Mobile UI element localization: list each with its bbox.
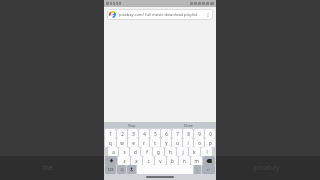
button[interactable]: o — [194, 138, 204, 147]
button[interactable]: 5 — [150, 129, 160, 138]
button[interactable]: Shift — [105, 156, 117, 165]
staticText: n — [183, 158, 186, 164]
button[interactable]: f — [141, 147, 152, 156]
button[interactable]: d — [130, 147, 140, 156]
staticText: k — [193, 149, 196, 155]
staticText: Done — [184, 123, 193, 128]
staticText: f — [146, 149, 148, 155]
button[interactable]: z — [118, 156, 130, 165]
staticText: . — [197, 167, 198, 172]
button[interactable]: pixabay.com/ full movie download playlis… — [107, 9, 213, 20]
button[interactable]: 3 — [128, 129, 138, 138]
staticText: b — [171, 158, 174, 164]
staticText: c — [147, 158, 150, 164]
staticText: j — [182, 149, 184, 155]
staticText: 123 — [107, 167, 114, 172]
staticText: ↵ — [207, 168, 210, 172]
staticText: the — [42, 163, 53, 173]
staticText: v — [159, 158, 162, 164]
button[interactable]: c — [143, 156, 154, 165]
staticText: h — [169, 149, 172, 155]
button[interactable]: ↵ — [202, 165, 215, 174]
staticText: d — [134, 149, 137, 155]
button[interactable]: 9 — [194, 129, 204, 138]
staticText: q — [109, 140, 112, 146]
button[interactable]: p — [205, 138, 215, 147]
button[interactable]: k — [189, 147, 200, 156]
staticText: 1 — [109, 131, 112, 137]
button[interactable]: 123 — [105, 165, 116, 174]
staticText: w — [120, 140, 124, 146]
staticText: o — [198, 140, 201, 146]
button[interactable]: e — [128, 138, 138, 147]
button[interactable]: 4 — [139, 129, 149, 138]
staticText: 8 — [187, 131, 190, 137]
button[interactable]: b — [167, 156, 178, 165]
button[interactable]: l — [201, 147, 212, 156]
staticText: l — [206, 149, 208, 155]
button[interactable]: w — [117, 138, 127, 147]
button[interactable]: Delete — [203, 156, 215, 165]
button[interactable]: 8 — [183, 129, 193, 138]
button[interactable]: j — [177, 147, 188, 156]
staticText: s — [123, 149, 126, 155]
button[interactable]: . — [194, 165, 201, 174]
button[interactable]: m — [191, 156, 202, 165]
staticText: a — [112, 149, 115, 155]
button[interactable]: v — [155, 156, 166, 165]
staticText: 0 — [209, 131, 212, 137]
button[interactable]: 7 — [172, 129, 182, 138]
staticText: g — [157, 149, 160, 155]
staticText: r — [143, 140, 145, 146]
staticText: i — [187, 140, 189, 146]
staticText: 5 — [154, 131, 157, 137]
staticText: z — [123, 158, 126, 164]
button[interactable]: s — [119, 147, 129, 156]
staticText: 7 — [176, 131, 179, 137]
button[interactable]: h — [165, 147, 176, 156]
staticText: 2 — [121, 131, 124, 137]
button[interactable]: y — [161, 138, 171, 147]
button[interactable]: 6 — [161, 129, 171, 138]
button[interactable]: 2 — [117, 129, 127, 138]
button[interactable]: x — [131, 156, 142, 165]
staticText: 6 — [165, 131, 168, 137]
staticText: pixabay.com/ full movie download playlis… — [119, 12, 203, 17]
staticText: ☺ — [120, 168, 124, 172]
button[interactable]: Voice input — [127, 165, 136, 174]
button[interactable]: More options — [205, 12, 211, 18]
staticText: p — [209, 140, 212, 146]
button[interactable]: q — [105, 138, 116, 147]
staticText: t — [154, 140, 156, 146]
staticText: y — [165, 140, 168, 146]
button[interactable]: n — [179, 156, 190, 165]
button[interactable]: a — [108, 147, 118, 156]
staticText: e — [132, 140, 135, 146]
staticText: 3 — [132, 131, 135, 137]
staticText: pixabay — [254, 163, 280, 173]
button[interactable]: 1 — [105, 129, 116, 138]
staticText: u — [176, 140, 179, 146]
button[interactable]: ☺ — [117, 165, 126, 174]
staticText: x — [135, 158, 138, 164]
staticText: 4 — [143, 131, 146, 137]
button[interactable]: t — [150, 138, 160, 147]
staticText: m — [194, 158, 199, 164]
button[interactable]: 0 — [205, 129, 215, 138]
button[interactable]: i — [183, 138, 193, 147]
button[interactable]: r — [139, 138, 149, 147]
button[interactable]: g — [153, 147, 164, 156]
staticText: Stop — [128, 123, 136, 128]
staticText: 9 — [198, 131, 201, 137]
button[interactable]: u — [172, 138, 182, 147]
